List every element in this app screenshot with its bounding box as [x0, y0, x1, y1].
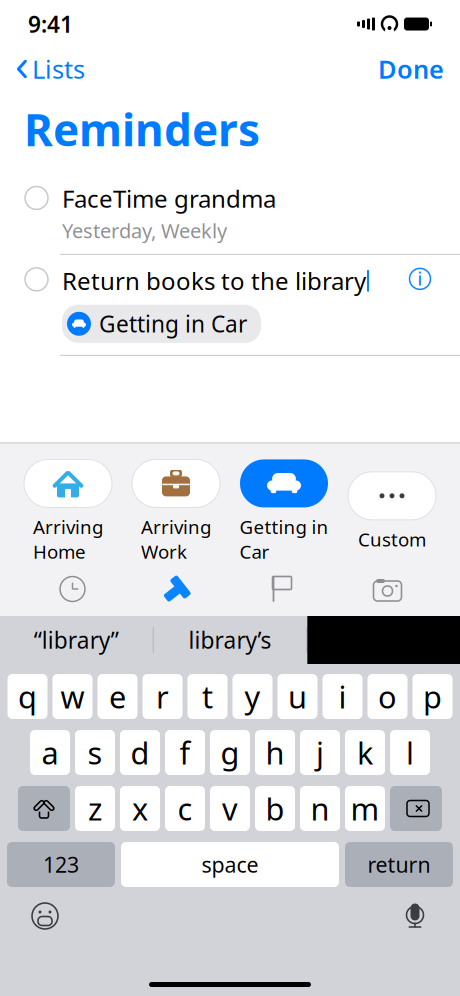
- staticText: x: [132, 788, 148, 829]
- staticText: i: [417, 267, 422, 290]
- button[interactable]: i: [322, 674, 362, 719]
- button[interactable]: t: [187, 674, 227, 719]
- button[interactable]: Dictation: [400, 901, 430, 931]
- button[interactable]: Arriving Home: [14, 459, 122, 564]
- button[interactable]: n: [300, 786, 340, 831]
- button[interactable]: Done: [378, 46, 444, 92]
- staticText: o: [378, 676, 397, 717]
- staticText: 123: [43, 850, 79, 879]
- staticText: e: [109, 676, 126, 717]
- button[interactable]: Lists: [16, 46, 85, 92]
- staticText: space: [201, 850, 258, 879]
- staticText: l: [406, 732, 414, 773]
- button[interactable]: Camera: [335, 574, 440, 604]
- button[interactable]: library’s: [154, 625, 306, 655]
- button[interactable]: Complete Return books to the library: [0, 265, 62, 291]
- staticText: p: [423, 676, 442, 717]
- staticText: f: [179, 732, 190, 773]
- button[interactable]: c: [165, 786, 205, 831]
- button[interactable]: e: [97, 674, 137, 719]
- button[interactable]: d: [120, 730, 160, 775]
- button[interactable]: w: [52, 674, 92, 719]
- button[interactable]: j: [300, 730, 340, 775]
- staticText: Yesterday, Weekly: [62, 217, 227, 244]
- button[interactable]: r: [142, 674, 182, 719]
- staticText: c: [177, 788, 192, 829]
- button[interactable]: a: [30, 730, 70, 775]
- staticText: return: [367, 850, 430, 879]
- button[interactable]: Shift: [18, 786, 70, 831]
- staticText: b: [265, 788, 284, 829]
- button[interactable]: Emoji: [30, 901, 60, 931]
- staticText: h: [265, 732, 284, 773]
- staticText: 9:41: [28, 9, 73, 39]
- staticText: library’s: [188, 625, 271, 655]
- button[interactable]: Getting in Car: [230, 459, 338, 564]
- staticText: Getting in Car: [239, 514, 328, 564]
- staticText: Custom: [358, 527, 426, 552]
- button[interactable]: Flag: [230, 574, 335, 604]
- button[interactable]: l: [390, 730, 430, 775]
- staticText: “library”: [34, 625, 119, 655]
- staticText: Return books to the library: [62, 265, 366, 297]
- button[interactable]: Complete FaceTime grandma: [0, 182, 62, 209]
- button[interactable]: Details: [408, 265, 460, 291]
- button[interactable]: q: [7, 674, 47, 719]
- staticText: j: [316, 732, 324, 773]
- staticText: r: [156, 676, 169, 717]
- staticText: u: [288, 676, 307, 717]
- button[interactable]: Delete: [390, 786, 442, 831]
- staticText: Arriving Home: [33, 514, 103, 564]
- button[interactable]: b: [255, 786, 295, 831]
- staticText: Done: [378, 52, 444, 86]
- button[interactable]: Location: [125, 574, 230, 604]
- button[interactable]: u: [277, 674, 317, 719]
- button[interactable]: m: [345, 786, 385, 831]
- staticText: m: [350, 788, 379, 829]
- staticText: Arriving Work: [141, 514, 211, 564]
- button[interactable]: x: [120, 786, 160, 831]
- button[interactable]: h: [255, 730, 295, 775]
- staticText: Lists: [32, 52, 85, 86]
- staticText: d: [130, 732, 149, 773]
- staticText: FaceTime grandma: [62, 182, 276, 214]
- button[interactable]: space: [121, 842, 339, 887]
- staticText: k: [357, 732, 373, 773]
- button[interactable]: Custom: [338, 472, 446, 552]
- staticText: q: [18, 676, 37, 717]
- button[interactable]: g: [210, 730, 250, 775]
- button[interactable]: “library”: [0, 625, 153, 655]
- staticText: g: [220, 732, 239, 773]
- button[interactable]: k: [345, 730, 385, 775]
- button[interactable]: o: [367, 674, 407, 719]
- staticText: i: [338, 676, 346, 717]
- button[interactable]: y: [232, 674, 272, 719]
- staticText: t: [202, 676, 213, 717]
- button[interactable]: f: [165, 730, 205, 775]
- button[interactable]: p: [412, 674, 452, 719]
- staticText: s: [87, 732, 102, 773]
- staticText: Getting in Car: [99, 309, 247, 339]
- button[interactable]: z: [75, 786, 115, 831]
- button[interactable]: v: [210, 786, 250, 831]
- button[interactable]: 123: [7, 842, 115, 887]
- button[interactable]: Date and time: [20, 574, 125, 604]
- button[interactable]: s: [75, 730, 115, 775]
- staticText: Reminders: [24, 100, 260, 158]
- button[interactable]: return: [345, 842, 453, 887]
- button[interactable]: Arriving Work: [122, 459, 230, 564]
- staticText: w: [60, 676, 84, 717]
- staticText: a: [41, 732, 58, 773]
- staticText: n: [310, 788, 329, 829]
- staticText: z: [88, 788, 102, 829]
- staticText: v: [222, 788, 238, 829]
- staticText: y: [244, 676, 260, 717]
